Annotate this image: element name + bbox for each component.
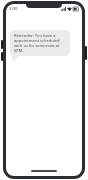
button[interactable]: Volume up <box>1 40 3 49</box>
staticText: Reminder: You have a appointment schedul… <box>14 33 66 53</box>
button[interactable]: Reminder: You have a appointment schedul… <box>10 30 70 56</box>
button[interactable]: Volume down <box>1 52 3 61</box>
button[interactable]: Power <box>85 46 87 60</box>
staticText: 3:00 <box>9 6 18 12</box>
